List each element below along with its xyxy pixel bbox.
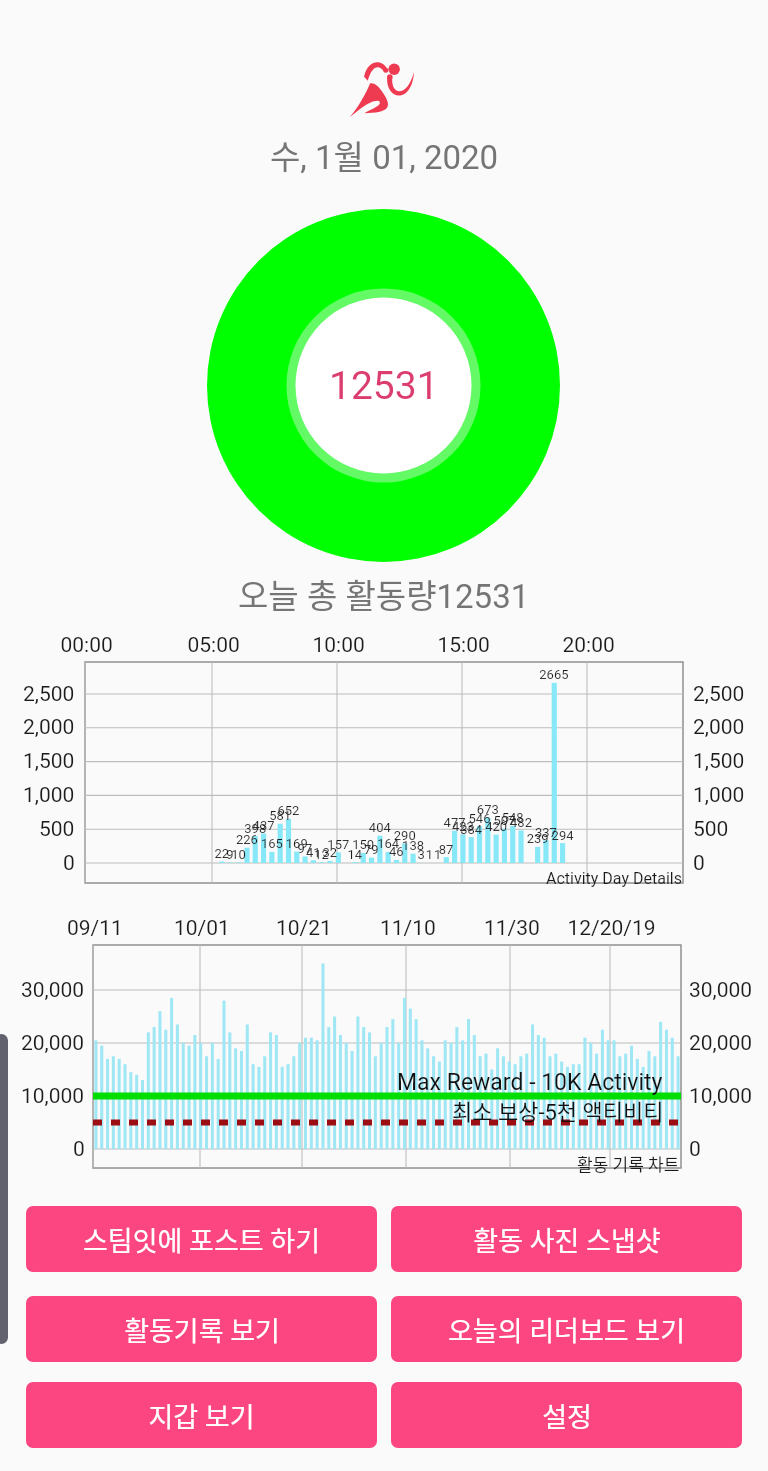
staticText: 오늘의 리더보드 보기 (448, 1310, 685, 1349)
staticText: 지갑 보기 (148, 1396, 255, 1435)
staticText: 활동기록 보기 (124, 1310, 280, 1349)
button[interactable]: 활동기록 보기 (26, 1296, 377, 1362)
button[interactable]: 오늘의 리더보드 보기 (391, 1296, 742, 1362)
staticText: 설정 (542, 1396, 592, 1435)
button[interactable]: 설정 (391, 1382, 742, 1448)
button[interactable]: 스팀잇에 포스트 하기 (26, 1206, 377, 1272)
staticText: 수, 1월 01, 2020 (270, 131, 499, 179)
staticText: 스팀잇에 포스트 하기 (83, 1220, 320, 1259)
button[interactable]: 활동 사진 스냅샷 (391, 1206, 742, 1272)
staticText: 활동 사진 스냅샷 (473, 1220, 661, 1259)
button[interactable]: 지갑 보기 (26, 1382, 377, 1448)
staticText: 12531 (329, 363, 439, 409)
staticText: 오늘 총 활동량12531 (238, 570, 530, 618)
